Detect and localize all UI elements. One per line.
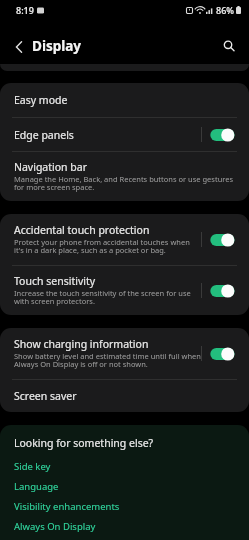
button[interactable]: Touch sensitivity bbox=[0, 266, 249, 315]
staticText: Easy mode bbox=[14, 93, 68, 107]
staticText: Side key bbox=[14, 460, 51, 473]
button[interactable]: Side key bbox=[0, 456, 249, 476]
button[interactable]: Navigate up bbox=[5, 33, 32, 60]
button[interactable]: Screen saver bbox=[0, 380, 249, 412]
staticText: Looking for something else? bbox=[14, 436, 154, 450]
button[interactable]: Navigation bar bbox=[0, 152, 249, 201]
staticText: Navigation bar bbox=[14, 160, 88, 174]
staticText: Manage the Home, Back, and Recents butto… bbox=[14, 174, 237, 193]
staticText: 8:19 bbox=[16, 4, 34, 16]
staticText: 86% bbox=[216, 4, 234, 16]
staticText: Show charging information bbox=[14, 337, 149, 351]
staticText: Protect your phone from accidental touch… bbox=[14, 237, 201, 256]
staticText: Display bbox=[32, 37, 82, 55]
staticText: Language bbox=[14, 480, 59, 493]
button[interactable]: Accidental touch protection bbox=[0, 214, 249, 265]
button[interactable]: Visibility enhancements bbox=[0, 496, 249, 516]
button[interactable]: Search bbox=[214, 31, 244, 61]
button[interactable]: Language bbox=[0, 476, 249, 496]
staticText: Increase the touch sensitivity of the sc… bbox=[14, 288, 201, 307]
staticText: Edge panels bbox=[14, 128, 74, 142]
button[interactable]: Edge panels bbox=[0, 118, 249, 151]
staticText: Visibility enhancements bbox=[14, 500, 120, 513]
button[interactable]: Show charging information bbox=[0, 328, 249, 379]
button[interactable]: Easy mode bbox=[0, 83, 249, 117]
staticText: Always On Display bbox=[14, 520, 96, 533]
staticText: Show battery level and estimated time un… bbox=[14, 351, 201, 370]
button[interactable]: Always On Display bbox=[0, 516, 249, 536]
staticText: Touch sensitivity bbox=[14, 274, 96, 288]
staticText: Screen saver bbox=[14, 389, 77, 403]
staticText: Accidental touch protection bbox=[14, 223, 150, 237]
